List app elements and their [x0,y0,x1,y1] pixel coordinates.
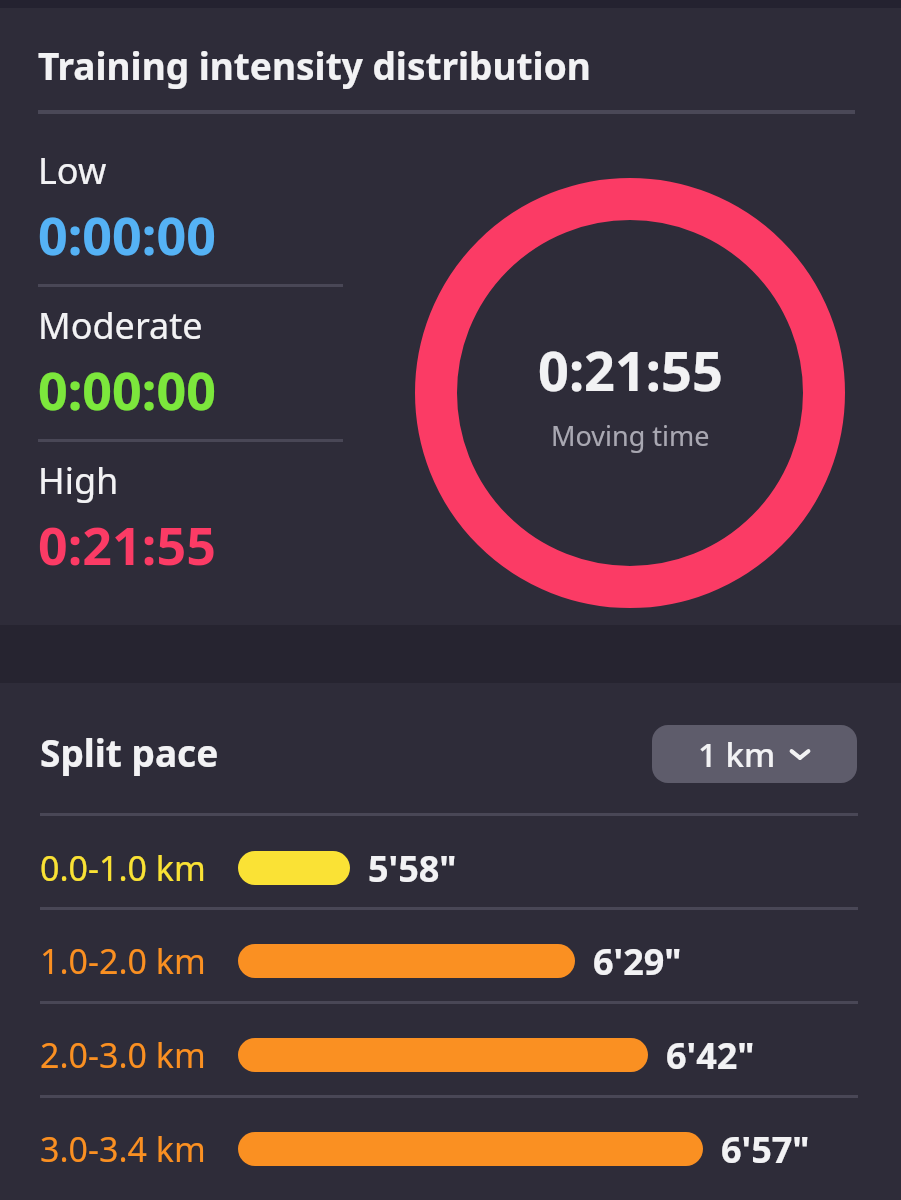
staticText: 6'42" [666,1031,755,1080]
button[interactable]: 1 km [652,725,857,783]
button[interactable]: 2.0-3.0 km [40,1027,901,1083]
button[interactable]: 0.0-1.0 km [40,840,901,896]
staticText: High [38,456,119,505]
staticText: 1 km [698,732,776,777]
staticText: 0.0-1.0 km [40,845,238,891]
staticText: 0:21:55 [538,333,723,407]
staticText: 0:00:00 [38,354,216,425]
staticText: 0:00:00 [38,199,216,270]
staticText: Low [38,146,107,195]
button[interactable]: 1.0-2.0 km [40,933,901,989]
button[interactable]: 3.0-3.4 km [40,1121,901,1177]
staticText: 6'57" [721,1125,810,1174]
staticText: 5'58" [368,844,457,893]
staticText: Moderate [38,301,203,350]
staticText: 1.0-2.0 km [40,938,238,984]
staticText: 2.0-3.0 km [40,1032,238,1078]
staticText: Moving time [551,417,710,454]
staticText: 3.0-3.4 km [40,1126,238,1172]
staticText: Split pace [40,727,219,777]
staticText: 6'29" [593,937,682,986]
staticText: 0:21:55 [38,509,216,580]
staticText: Training intensity distribution [38,40,591,90]
